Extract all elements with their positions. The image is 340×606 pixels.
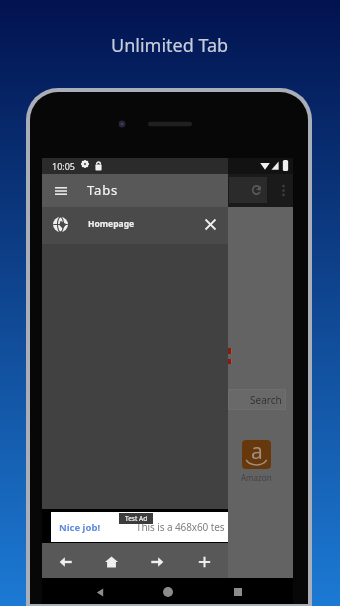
staticText: Tabs (87, 181, 119, 199)
staticText: Unlimited Tab (111, 33, 229, 58)
button[interactable]: Homepage (42, 207, 228, 244)
staticText: Amazon (241, 472, 272, 483)
button[interactable]: More options (274, 177, 290, 203)
button[interactable]: Search (228, 389, 286, 410)
button[interactable]: a (231, 440, 281, 483)
staticText: a (251, 440, 263, 466)
button[interactable]: Back (42, 543, 88, 578)
button[interactable]: Open navigation menu (42, 174, 74, 207)
button[interactable]: Back (89, 578, 111, 604)
staticText: 10:05 (52, 160, 76, 172)
button[interactable]: Home (88, 543, 134, 578)
button[interactable]: Recent apps (227, 578, 249, 604)
staticText: Test Ad (125, 514, 148, 523)
staticText: This is a 468x60 tes (136, 520, 225, 534)
button[interactable]: New tab (181, 543, 228, 578)
staticText: Search (250, 393, 282, 407)
button[interactable]: Home (157, 578, 179, 604)
staticText: Homepage (88, 218, 135, 230)
button[interactable]: Close tab (197, 207, 222, 244)
button[interactable]: Forward (134, 543, 181, 578)
button[interactable]: Reload (229, 177, 267, 203)
staticText: Nice job! (59, 521, 101, 534)
